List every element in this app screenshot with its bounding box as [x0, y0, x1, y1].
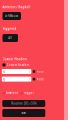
button[interactable]: LeftMouse: [2, 12, 21, 20]
staticText: Ambient / Ragdoll: [2, 5, 30, 9]
staticText: Triggered: [2, 27, 16, 30]
staticText: x: [29, 70, 30, 73]
button[interactable]: Custom Headers: [2, 63, 29, 67]
staticText: Rust1: [37, 77, 45, 81]
staticText: Custom Headers: [7, 63, 29, 67]
staticText: x: [29, 77, 30, 81]
staticText: Rust1: [37, 70, 45, 73]
button[interactable]: Start: [2, 109, 45, 117]
button[interactable]: Remove header: [33, 70, 35, 73]
staticText: q: [3, 70, 5, 73]
staticText: Custom Headers: [2, 57, 26, 61]
staticText: Trigger: [24, 91, 34, 95]
staticText: q: [3, 77, 5, 81]
staticText: LeftMouse: [5, 14, 19, 18]
button[interactable]: All: [2, 34, 18, 42]
button[interactable]: Routine [0] +50k: [2, 100, 45, 107]
staticText: Start: [21, 111, 26, 115]
staticText: All: [8, 36, 12, 40]
staticText: Routine [0] +50k: [11, 102, 36, 105]
staticText: Ambient: [6, 91, 18, 95]
button[interactable]: q: [2, 77, 31, 82]
button[interactable]: q: [2, 69, 31, 74]
